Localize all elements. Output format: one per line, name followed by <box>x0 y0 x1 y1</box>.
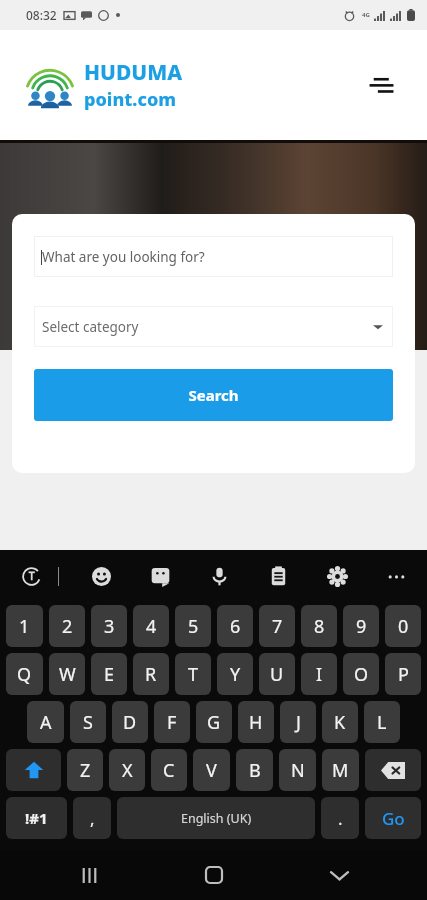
button[interactable]: English (UK) <box>117 797 315 839</box>
button[interactable]: B <box>236 749 273 791</box>
staticText: 8 <box>314 614 325 639</box>
button[interactable]: Go <box>365 797 421 839</box>
button[interactable]: T <box>175 653 211 695</box>
button[interactable]: Stickers <box>143 559 177 593</box>
button[interactable]: Q <box>6 653 43 695</box>
button[interactable]: Home <box>190 851 238 899</box>
button[interactable]: 9 <box>343 605 379 647</box>
button[interactable]: P <box>385 653 421 695</box>
button[interactable]: 8 <box>301 605 337 647</box>
staticText: O <box>354 662 369 687</box>
button[interactable]: 7 <box>259 605 295 647</box>
button[interactable]: Shift <box>6 749 61 791</box>
button[interactable]: Backspace <box>365 749 421 791</box>
staticText: F <box>167 710 177 735</box>
staticText: 08:32 <box>26 7 57 23</box>
staticText: U <box>270 662 284 687</box>
staticText: 3 <box>104 614 115 639</box>
staticText: Z <box>80 758 91 783</box>
button[interactable]: !#1 <box>6 797 67 839</box>
button[interactable]: W <box>49 653 85 695</box>
staticText: 4 <box>146 614 157 639</box>
button[interactable]: More options <box>379 559 413 593</box>
button[interactable]: 5 <box>175 605 211 647</box>
button[interactable]: What are you looking for? <box>34 236 393 277</box>
staticText: G <box>207 710 221 735</box>
button[interactable]: E <box>91 653 127 695</box>
staticText: C <box>163 758 175 783</box>
staticText: D <box>123 710 137 735</box>
button[interactable]: X <box>109 749 145 791</box>
staticText: Q <box>17 662 32 687</box>
button[interactable]: 6 <box>217 605 253 647</box>
button[interactable]: Recent apps <box>65 851 113 899</box>
button[interactable]: 3 <box>91 605 127 647</box>
button[interactable]: Search <box>34 369 393 421</box>
button[interactable]: N <box>279 749 316 791</box>
staticText: 4G <box>362 11 370 19</box>
staticText: N <box>291 758 305 783</box>
button[interactable]: Z <box>67 749 103 791</box>
staticText: Go <box>382 807 405 830</box>
staticText: L <box>377 710 387 735</box>
staticText: 2 <box>62 614 73 639</box>
button[interactable]: Open menu <box>359 63 403 107</box>
staticText: H <box>249 710 263 735</box>
button[interactable]: U <box>259 653 295 695</box>
staticText: E <box>104 662 115 687</box>
button[interactable]: L <box>364 701 400 743</box>
button[interactable]: Voice input <box>202 559 236 593</box>
staticText: J <box>296 710 301 735</box>
staticText: X <box>122 758 133 783</box>
button[interactable]: Hide keyboard <box>315 851 363 899</box>
button[interactable]: D <box>112 701 148 743</box>
button[interactable]: Y <box>217 653 253 695</box>
button[interactable]: V <box>193 749 230 791</box>
staticText: English (UK) <box>181 810 252 827</box>
staticText: B <box>249 758 261 783</box>
button[interactable]: M <box>322 749 359 791</box>
staticText: What are you looking for? <box>42 248 205 266</box>
button[interactable]: C <box>151 749 187 791</box>
button[interactable]: 1 <box>6 605 43 647</box>
staticText: Select category <box>42 318 139 336</box>
staticText: P <box>398 662 409 687</box>
button[interactable]: K <box>322 701 358 743</box>
staticText: R <box>145 662 157 687</box>
staticText: A <box>40 710 52 735</box>
staticText: Search <box>188 385 239 405</box>
button[interactable]: Translate <box>14 559 48 593</box>
staticText: !#1 <box>25 808 48 828</box>
button[interactable]: 2 <box>49 605 85 647</box>
staticText: 9 <box>356 614 367 639</box>
staticText: T <box>188 662 199 687</box>
button[interactable]: Select category <box>34 306 393 347</box>
button[interactable]: H <box>238 701 274 743</box>
staticText: . <box>338 807 343 830</box>
staticText: 6 <box>230 614 241 639</box>
button[interactable]: 0 <box>385 605 421 647</box>
staticText: , <box>90 807 95 830</box>
button[interactable]: G <box>196 701 232 743</box>
button[interactable]: F <box>154 701 190 743</box>
button[interactable]: 4 <box>133 605 169 647</box>
button[interactable]: Keyboard settings <box>320 559 354 593</box>
staticText: S <box>83 710 93 735</box>
staticText: 1 <box>19 614 30 639</box>
button[interactable]: R <box>133 653 169 695</box>
staticText: W <box>59 662 76 687</box>
button[interactable]: A <box>27 701 64 743</box>
staticText: point.com <box>84 87 176 112</box>
button[interactable]: J <box>280 701 316 743</box>
staticText: 0 <box>398 614 409 639</box>
button[interactable]: O <box>343 653 379 695</box>
staticText: Y <box>230 662 241 687</box>
button[interactable]: Clipboard <box>261 559 295 593</box>
button[interactable]: Emoji <box>84 559 118 593</box>
button[interactable]: S <box>70 701 106 743</box>
staticText: K <box>334 710 346 735</box>
button[interactable]: . <box>321 797 359 839</box>
staticText: 5 <box>188 614 199 639</box>
button[interactable]: I <box>301 653 337 695</box>
button[interactable]: , <box>73 797 111 839</box>
